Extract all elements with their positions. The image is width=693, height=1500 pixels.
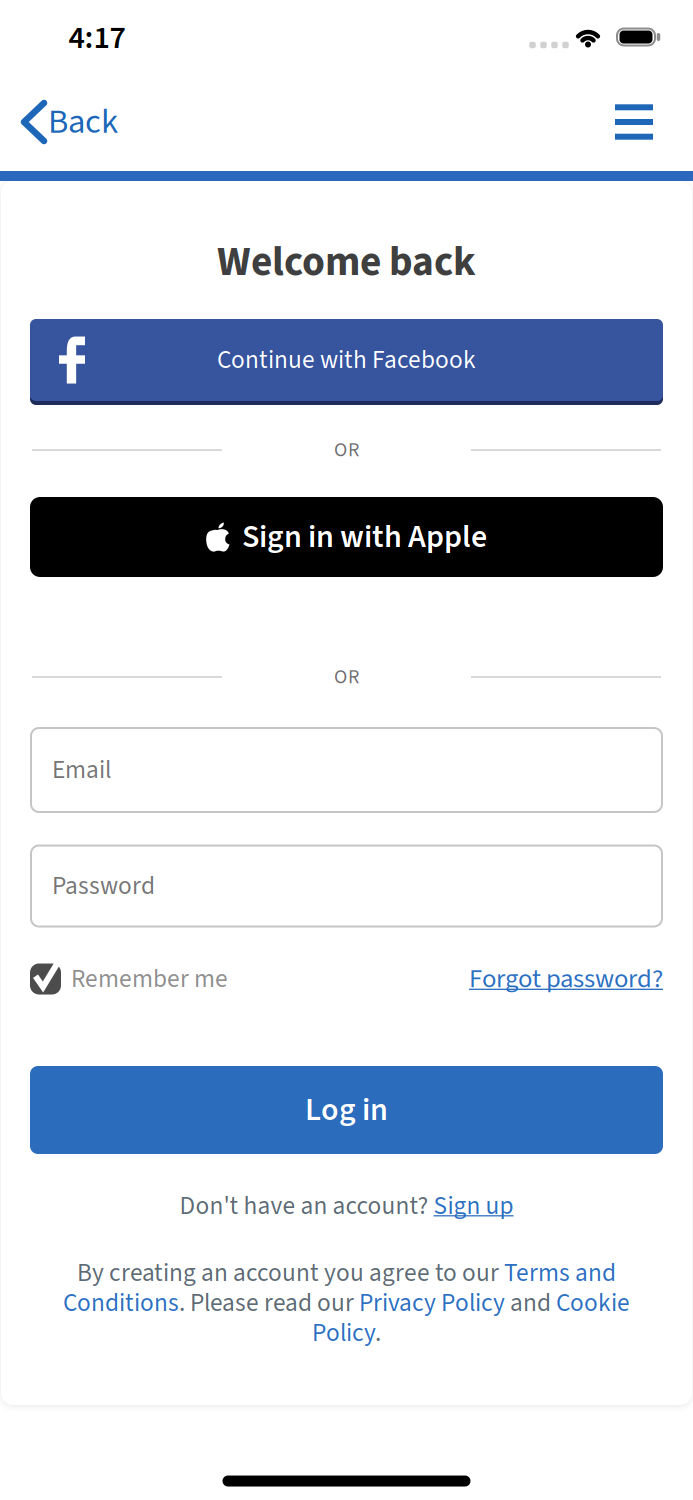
button[interactable]: Password <box>30 844 663 927</box>
staticText: Remember me <box>71 961 228 997</box>
button[interactable]: By creating an account you agree to our … <box>0 1255 693 1291</box>
staticText: Back <box>48 98 118 146</box>
button[interactable]: Conditions. Please read our Privacy Poli… <box>0 1285 693 1321</box>
staticText: OR <box>334 663 359 691</box>
button[interactable]: Policy. <box>0 1315 693 1351</box>
button[interactable]: Forgot password? <box>469 960 663 997</box>
button[interactable]: Continue with Facebook <box>30 319 663 405</box>
staticText: Email <box>52 752 111 788</box>
staticText: OR <box>334 436 359 464</box>
staticText: Password <box>52 868 155 904</box>
button[interactable]: Don't have an account? Sign up <box>96 1188 596 1224</box>
staticText: Forgot password? <box>469 960 663 997</box>
button[interactable]: Remember me <box>30 961 228 997</box>
button[interactable]: Email <box>30 727 663 813</box>
staticText: Sign in with Apple <box>242 515 487 559</box>
staticText: Log in <box>305 1088 388 1132</box>
button[interactable]: Sign in with Apple <box>30 497 663 577</box>
staticText: 4:17 <box>68 16 125 60</box>
staticText: Continue with Facebook <box>217 342 476 378</box>
staticText: Policy. <box>312 1315 381 1351</box>
staticText: By creating an account you agree to our … <box>77 1255 616 1291</box>
staticText: Welcome back <box>217 233 476 291</box>
button[interactable]: Back <box>24 96 118 148</box>
staticText: Conditions. Please read our Privacy Poli… <box>63 1285 630 1321</box>
staticText: Don't have an account? Sign up <box>179 1188 513 1224</box>
button[interactable] <box>612 100 656 144</box>
button[interactable]: Log in <box>30 1066 663 1154</box>
